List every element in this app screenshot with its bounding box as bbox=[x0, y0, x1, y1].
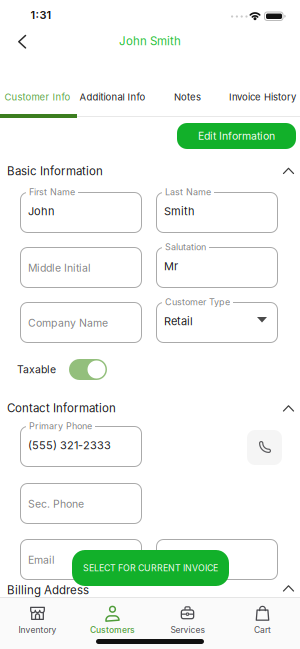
button[interactable]: Collapse Basic Information bbox=[279, 163, 298, 178]
staticText: 1:31 bbox=[30, 8, 51, 22]
staticText: Company Name bbox=[28, 316, 108, 329]
staticText: Contact Information bbox=[7, 401, 116, 415]
button[interactable]: Invoice History bbox=[225, 84, 300, 110]
staticText: Salutation bbox=[165, 241, 206, 252]
button[interactable]: Taxable bbox=[69, 359, 107, 380]
staticText: Primary Phone bbox=[29, 420, 92, 431]
staticText: Notes bbox=[174, 91, 201, 103]
staticText: Billing Address bbox=[7, 583, 89, 597]
staticText: Email bbox=[28, 553, 55, 566]
staticText: Sec. Phone bbox=[28, 497, 84, 510]
staticText: Invoice History bbox=[229, 91, 296, 103]
staticText: Taxable bbox=[17, 363, 56, 376]
staticText: Middle Initial bbox=[28, 261, 91, 274]
staticText: John bbox=[28, 204, 54, 218]
button[interactable]: Cart bbox=[225, 603, 300, 637]
button[interactable]: Inventory bbox=[0, 603, 75, 637]
staticText: (555) 321-2333 bbox=[28, 438, 111, 452]
staticText: Smith bbox=[164, 204, 195, 218]
button[interactable]: SELECT FOR CURRENT INVOICE bbox=[72, 550, 229, 586]
button[interactable]: Services bbox=[150, 603, 225, 637]
button[interactable]: Additional Info bbox=[75, 84, 150, 110]
staticText: Inventory bbox=[18, 625, 56, 635]
staticText: Services bbox=[170, 625, 204, 635]
button[interactable]: Back bbox=[12, 29, 33, 55]
button[interactable]: Call bbox=[247, 430, 282, 465]
staticText: Cart bbox=[254, 625, 271, 635]
staticText: Retail bbox=[164, 314, 193, 328]
button[interactable]: Customer Info bbox=[0, 84, 75, 110]
staticText: Customers bbox=[90, 625, 135, 635]
staticText: Edit Information bbox=[198, 130, 275, 142]
staticText: Basic Information bbox=[7, 164, 103, 178]
staticText: Additional Info bbox=[79, 91, 145, 103]
staticText: First Name bbox=[29, 186, 75, 197]
staticText: SELECT FOR CURRENT INVOICE bbox=[83, 563, 218, 573]
button[interactable]: Collapse Contact Information bbox=[279, 401, 298, 416]
staticText: Last Name bbox=[165, 186, 211, 197]
staticText: John Smith bbox=[119, 34, 181, 48]
button[interactable]: Edit Information bbox=[177, 123, 296, 149]
button[interactable]: Collapse Billing Address bbox=[279, 581, 298, 596]
staticText: Customer Info bbox=[4, 91, 70, 103]
staticText: Mr bbox=[164, 259, 178, 273]
staticText: Customer Type bbox=[165, 296, 230, 307]
button[interactable]: Retail bbox=[156, 302, 278, 343]
button[interactable]: Notes bbox=[150, 84, 225, 110]
button[interactable]: Customers bbox=[75, 603, 150, 637]
